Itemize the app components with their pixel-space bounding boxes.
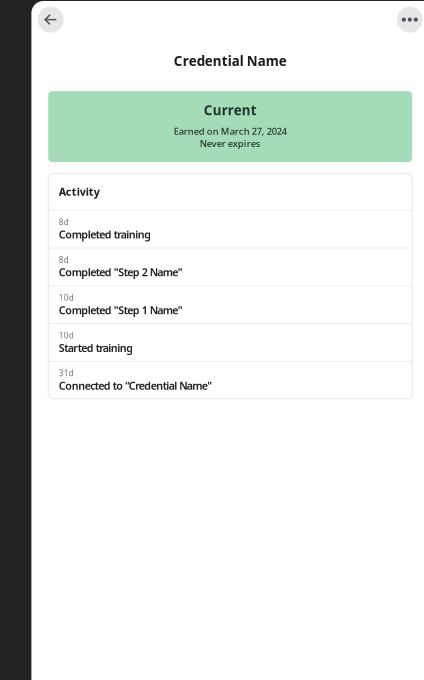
button[interactable]: 10d [48, 286, 412, 323]
staticText: 10d [59, 330, 74, 341]
staticText: Current [204, 101, 257, 119]
button[interactable]: Back [38, 7, 64, 33]
staticText: Started training [59, 341, 133, 355]
button[interactable]: More options [397, 7, 423, 33]
staticText: Connected to “Credential Name" [59, 378, 212, 393]
button[interactable]: 8d [48, 211, 412, 247]
staticText: Completed "Step 1 Name" [59, 303, 183, 317]
staticText: Credential Name [174, 52, 287, 70]
staticText: Completed training [59, 227, 151, 241]
button[interactable]: 10d [48, 324, 412, 361]
staticText: 8d [59, 254, 69, 265]
staticText: Earned on March 27, 2024 [174, 125, 287, 137]
button[interactable]: 8d [48, 248, 412, 285]
staticText: Completed "Step 2 Name" [59, 265, 183, 279]
staticText: 10d [59, 292, 74, 303]
staticText: Activity [59, 185, 100, 199]
staticText: Never expires [200, 137, 261, 150]
staticText: 31d [59, 368, 74, 378]
button[interactable]: 31d [48, 362, 412, 399]
staticText: 8d [59, 217, 69, 227]
